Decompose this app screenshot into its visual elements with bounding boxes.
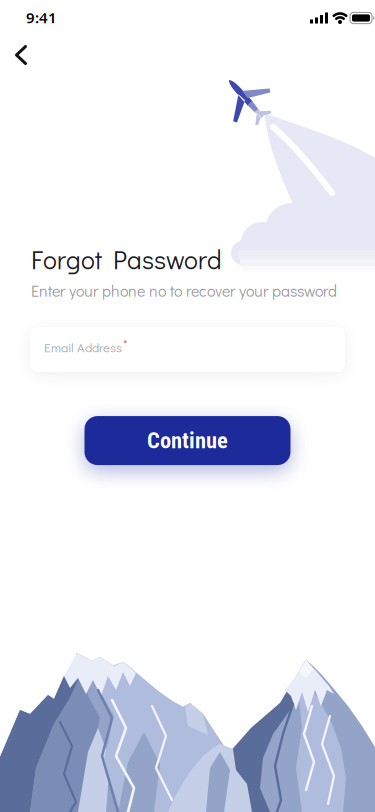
button[interactable] (0, 33, 44, 77)
staticText: * (123, 335, 128, 352)
staticText: 9:41 (26, 7, 57, 28)
staticText: Continue (147, 427, 228, 454)
staticText: Forgot Password (31, 242, 222, 276)
button[interactable]: Continue (84, 416, 290, 465)
staticText: Enter your phone no to recover your pass… (31, 280, 337, 301)
button[interactable]: Email Address (30, 327, 345, 372)
staticText: Email Address (44, 338, 122, 355)
